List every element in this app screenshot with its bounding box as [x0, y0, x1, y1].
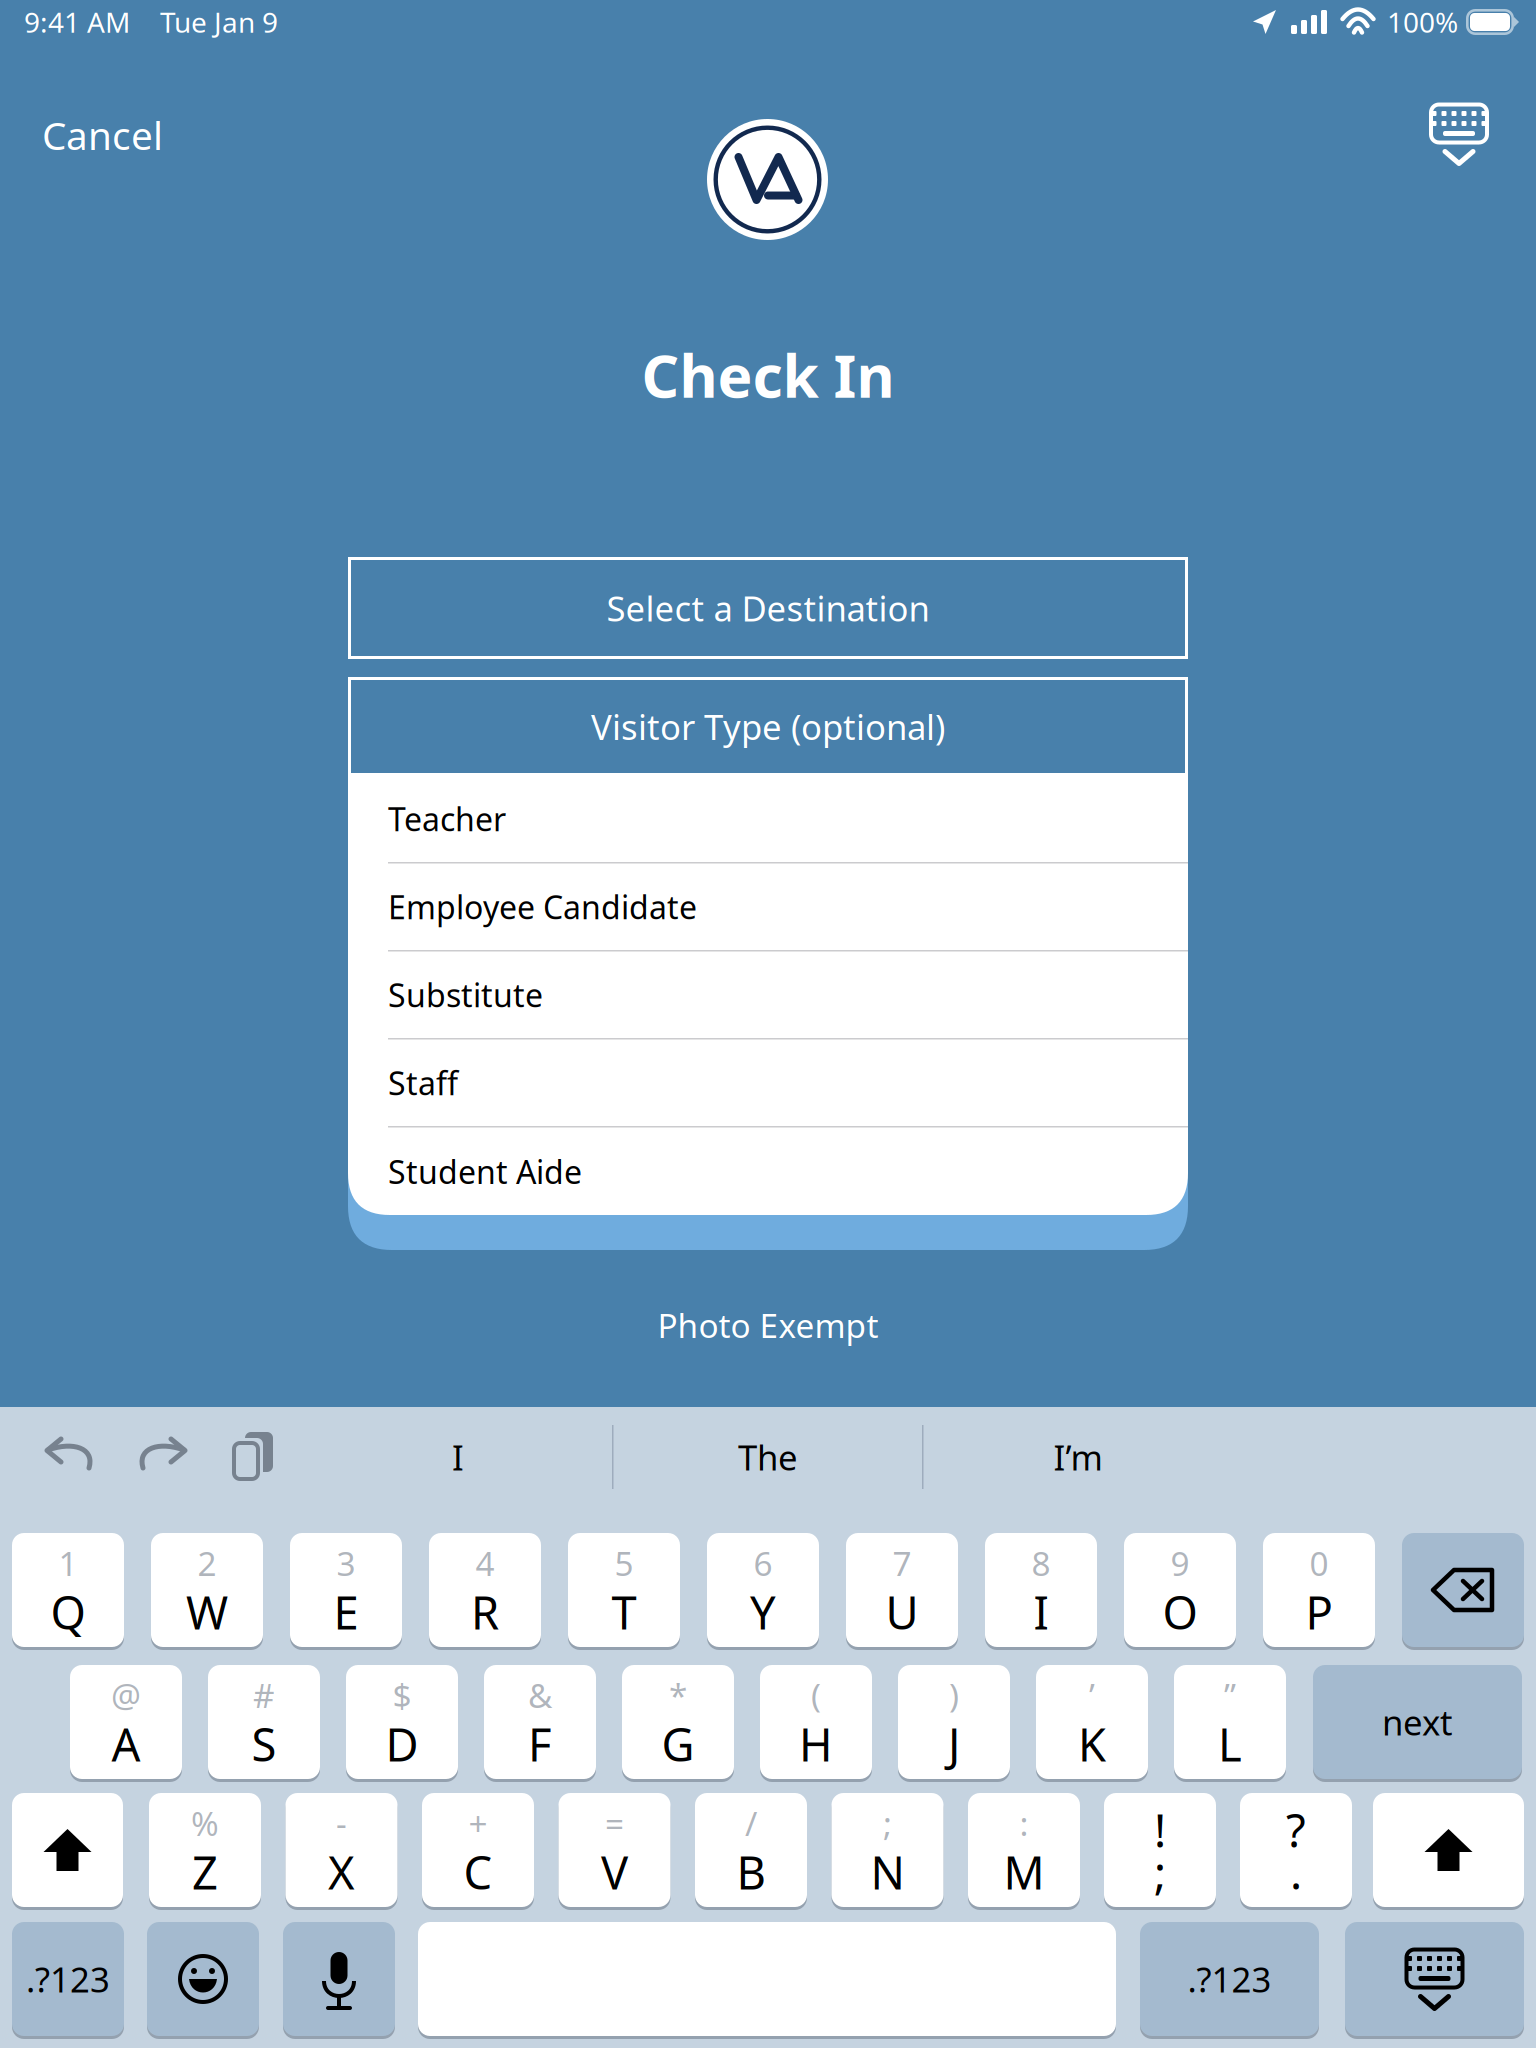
- button[interactable]: .?123: [1140, 1922, 1319, 2036]
- staticText: B: [736, 1842, 765, 1902]
- button[interactable]: 7: [846, 1533, 958, 1647]
- staticText: +: [468, 1801, 487, 1845]
- button[interactable]: ”: [1174, 1665, 1286, 1779]
- button[interactable]: I’m: [923, 1407, 1233, 1507]
- staticText: E: [333, 1582, 358, 1642]
- button[interactable]: #: [208, 1665, 320, 1779]
- button[interactable]: 4: [429, 1533, 541, 1647]
- button[interactable]: ;: [831, 1793, 943, 1907]
- button[interactable]: ): [898, 1665, 1010, 1779]
- staticText: Student Aide: [388, 1150, 582, 1193]
- button[interactable]: Undo: [34, 1407, 108, 1507]
- staticText: Cancel: [42, 109, 163, 161]
- staticText: D: [385, 1714, 418, 1774]
- button[interactable]: &: [484, 1665, 596, 1779]
- button[interactable]: $: [346, 1665, 458, 1779]
- staticText: A: [111, 1714, 140, 1774]
- button[interactable]: Shift: [12, 1793, 123, 1907]
- button[interactable]: Substitute: [348, 951, 1188, 1039]
- button[interactable]: 0: [1263, 1533, 1375, 1647]
- staticText: Q: [50, 1582, 85, 1642]
- staticText: 7: [892, 1541, 911, 1585]
- button[interactable]: Visitor Type (optional): [348, 677, 1188, 776]
- staticText: G: [661, 1714, 694, 1774]
- staticText: %: [191, 1801, 219, 1845]
- button[interactable]: 2: [151, 1533, 263, 1647]
- button[interactable]: Student Aide: [348, 1127, 1188, 1215]
- button[interactable]: -: [285, 1793, 397, 1907]
- button[interactable]: Redo: [124, 1407, 198, 1507]
- button[interactable]: Shift: [1373, 1793, 1524, 1907]
- button[interactable]: ?: [1240, 1793, 1352, 1907]
- staticText: X: [328, 1842, 355, 1902]
- staticText: Photo Exempt: [657, 1303, 878, 1347]
- button[interactable]: =: [558, 1793, 670, 1907]
- button[interactable]: 8: [985, 1533, 1097, 1647]
- button[interactable]: 1: [12, 1533, 124, 1647]
- button[interactable]: Delete: [1402, 1533, 1524, 1647]
- staticText: $: [392, 1673, 411, 1717]
- staticText: F: [528, 1714, 552, 1774]
- button[interactable]: ’: [1036, 1665, 1148, 1779]
- button[interactable]: Teacher: [348, 775, 1188, 863]
- staticText: @: [111, 1673, 141, 1717]
- staticText: =: [605, 1801, 624, 1845]
- staticText: /: [745, 1801, 757, 1845]
- button[interactable]: 5: [568, 1533, 680, 1647]
- staticText: Teacher: [388, 797, 506, 840]
- staticText: S: [251, 1714, 276, 1774]
- staticText: Substitute: [388, 973, 543, 1016]
- button[interactable]: Hide Keyboard: [1400, 88, 1518, 180]
- button[interactable]: 6: [707, 1533, 819, 1647]
- staticText: (: [811, 1673, 821, 1717]
- button[interactable]: Paste: [214, 1407, 288, 1507]
- button[interactable]: %: [149, 1793, 261, 1907]
- button[interactable]: /: [695, 1793, 807, 1907]
- button[interactable]: next: [1313, 1665, 1522, 1779]
- staticText: K: [1078, 1714, 1106, 1774]
- button[interactable]: Cancel: [0, 92, 300, 178]
- staticText: ”: [1224, 1673, 1236, 1717]
- button[interactable]: +: [422, 1793, 534, 1907]
- button[interactable]: Employee Candidate: [348, 863, 1188, 951]
- button[interactable]: !: [1104, 1793, 1216, 1907]
- button[interactable]: Emoji: [147, 1922, 259, 2036]
- staticText: 0: [1309, 1541, 1328, 1585]
- staticText: 6: [753, 1541, 772, 1585]
- staticText: 4: [475, 1541, 494, 1585]
- staticText: ?: [1286, 1800, 1306, 1860]
- staticText: H: [799, 1714, 833, 1774]
- staticText: Visitor Type (optional): [591, 703, 945, 749]
- staticText: 9:41 AM: [24, 3, 130, 41]
- button[interactable]: Select a Destination: [348, 557, 1188, 659]
- staticText: next: [1382, 1699, 1453, 1745]
- button[interactable]: Staff: [348, 1039, 1188, 1127]
- button[interactable]: Photo Exempt: [0, 1294, 1536, 1356]
- staticText: 8: [1031, 1541, 1050, 1585]
- staticText: I: [452, 1434, 464, 1480]
- button[interactable]: Hide Keyboard: [1345, 1922, 1524, 2036]
- button[interactable]: I: [303, 1407, 613, 1507]
- staticText: U: [885, 1582, 918, 1642]
- staticText: Tue Jan 9: [160, 3, 278, 41]
- staticText: I’m: [1053, 1434, 1102, 1480]
- staticText: -: [336, 1801, 347, 1845]
- button[interactable]: 9: [1124, 1533, 1236, 1647]
- button[interactable]: 3: [290, 1533, 402, 1647]
- button[interactable]: (: [760, 1665, 872, 1779]
- button[interactable]: Dictation: [283, 1922, 395, 2036]
- staticText: :: [1019, 1801, 1028, 1845]
- button[interactable]: .?123: [12, 1922, 124, 2036]
- staticText: .?123: [1187, 1956, 1271, 2002]
- staticText: #: [253, 1673, 275, 1717]
- button[interactable]: The: [613, 1407, 923, 1507]
- staticText: 5: [614, 1541, 633, 1585]
- button[interactable]: @: [70, 1665, 182, 1779]
- staticText: P: [1305, 1582, 1332, 1642]
- staticText: The: [738, 1434, 798, 1480]
- button[interactable]: *: [622, 1665, 734, 1779]
- button[interactable]: :: [968, 1793, 1080, 1907]
- staticText: &: [528, 1673, 552, 1717]
- staticText: Z: [192, 1842, 218, 1902]
